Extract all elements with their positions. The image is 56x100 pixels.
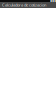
staticText: ▮▮▮ bbox=[50, 0, 56, 3]
staticText: Calculadora de cotizacion bbox=[2, 2, 46, 8]
